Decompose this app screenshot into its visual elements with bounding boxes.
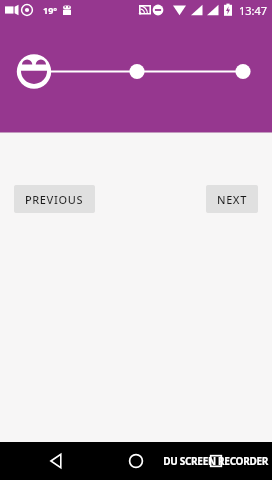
button[interactable]: Back [32, 442, 80, 480]
button[interactable]: Home [112, 442, 160, 480]
staticText: 13:47 [239, 3, 268, 18]
button[interactable]: PREVIOUS [14, 185, 95, 213]
staticText: PREVIOUS [25, 192, 84, 207]
button[interactable]: NEXT [206, 185, 258, 213]
staticText: DU SCREEN RECORDER [163, 454, 268, 468]
button[interactable]: Recent apps [192, 442, 240, 480]
staticText: NEXT [217, 192, 247, 207]
staticText: 19° [43, 4, 58, 16]
